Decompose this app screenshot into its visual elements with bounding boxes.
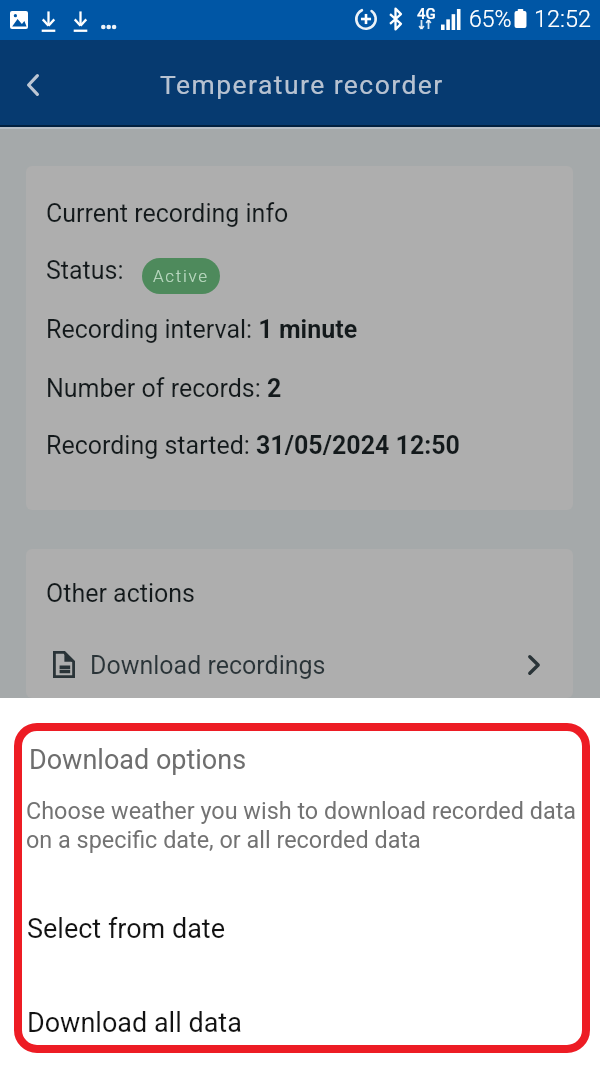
staticText: 65% (469, 6, 512, 33)
staticText: Other actions (46, 579, 195, 608)
staticText: 4G (417, 5, 436, 23)
staticText: Recording started: 31/05/2024 12:50 (46, 431, 460, 460)
staticText: Active (153, 266, 209, 286)
staticText: Number of records: 2 (46, 374, 282, 403)
staticText: Download all data (27, 1007, 242, 1039)
button[interactable]: Download all data (0, 989, 600, 1049)
staticText: Current recording info (46, 199, 289, 228)
button[interactable]: Select from date (0, 895, 600, 955)
staticText: Select from date (27, 913, 226, 945)
staticText: Recording interval: 1 minute (46, 315, 358, 344)
staticText: Status: (46, 256, 124, 285)
staticText: Temperature recorder (160, 69, 444, 100)
button[interactable]: Back (5, 57, 61, 113)
staticText: Download recordings (90, 651, 326, 680)
staticText: Choose weather you wish to download reco… (26, 797, 577, 853)
staticText: 12:52 (534, 5, 592, 33)
button[interactable]: Download recordings (26, 633, 573, 696)
staticText: Download options (29, 744, 247, 776)
